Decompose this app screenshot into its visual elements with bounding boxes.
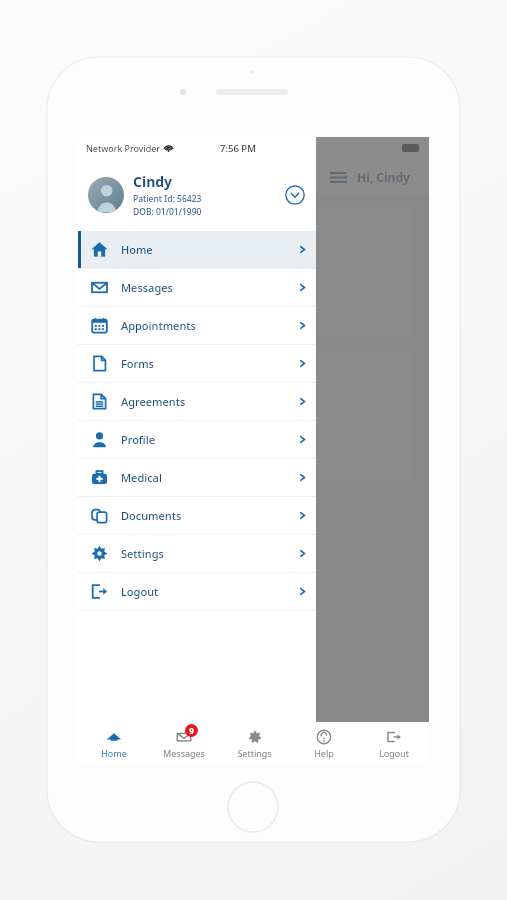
button[interactable]: Home bbox=[78, 231, 316, 268]
button[interactable]: Cindy bbox=[78, 159, 316, 231]
staticText: Settings bbox=[121, 546, 164, 561]
staticText: Patient Id: 56423 bbox=[133, 193, 202, 205]
staticText: DOB: 01/01/1990 bbox=[133, 206, 202, 218]
button[interactable]: Profile bbox=[78, 421, 316, 458]
button[interactable]: 9 bbox=[149, 722, 219, 765]
staticText: Home bbox=[101, 747, 127, 759]
staticText: Messages bbox=[163, 747, 205, 759]
button[interactable]: Home bbox=[78, 722, 149, 765]
button[interactable]: Documents bbox=[78, 497, 316, 534]
staticText: Forms bbox=[121, 356, 154, 371]
button[interactable]: Help bbox=[289, 722, 359, 765]
button[interactable]: Appointments bbox=[78, 307, 316, 344]
button[interactable]: Messages bbox=[94, 351, 413, 479]
staticText: Medical bbox=[121, 470, 162, 485]
staticText: 9 bbox=[189, 725, 194, 736]
button[interactable]: Medical bbox=[78, 459, 316, 496]
button[interactable]: Logout bbox=[359, 722, 429, 765]
staticText: Messages bbox=[121, 280, 173, 295]
staticText: Cindy bbox=[133, 172, 173, 191]
button[interactable]: Settings bbox=[219, 722, 289, 765]
staticText: Documents bbox=[121, 508, 182, 523]
staticText: Help bbox=[314, 747, 334, 759]
staticText: Settings bbox=[237, 747, 272, 759]
staticText: Hi, Cindy bbox=[357, 169, 410, 185]
staticText: Agreements bbox=[121, 394, 186, 409]
staticText: Logout bbox=[121, 584, 159, 599]
staticText: Profile bbox=[121, 432, 156, 447]
button[interactable]: Expand profile bbox=[282, 182, 308, 208]
button[interactable]: Bulletin Board bbox=[94, 209, 413, 337]
staticText: 7:56 PM bbox=[220, 142, 256, 155]
staticText: 3 Bulletins bbox=[232, 297, 277, 309]
button[interactable]: Forms bbox=[78, 345, 316, 382]
staticText: Logout bbox=[379, 747, 409, 759]
staticText: Appointments bbox=[121, 318, 196, 333]
button[interactable]: Messages bbox=[78, 269, 316, 306]
staticText: Bulletin Board bbox=[204, 275, 304, 294]
staticText: Home bbox=[121, 242, 153, 257]
staticText: Messages bbox=[219, 417, 288, 436]
button[interactable]: Logout bbox=[78, 573, 316, 610]
button[interactable]: Agreements bbox=[78, 383, 316, 420]
button[interactable]: Settings bbox=[78, 535, 316, 572]
staticText: You have 9 new messages bbox=[198, 439, 309, 451]
staticText: Network Provider bbox=[86, 142, 161, 154]
